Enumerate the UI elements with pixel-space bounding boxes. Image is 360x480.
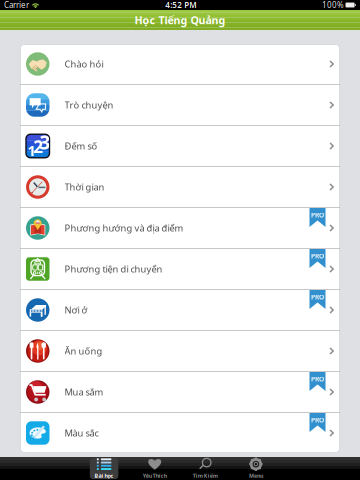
staticText: 100% <box>322 0 344 10</box>
button[interactable]: Mua sắm <box>20 372 340 412</box>
staticText: Mua sắm <box>64 386 103 398</box>
staticText: 4:52 PM <box>165 0 196 10</box>
button[interactable]: Chào hỏi <box>20 44 340 84</box>
button[interactable]: Phương tiện di chuyển <box>20 249 340 289</box>
button[interactable]: Menu <box>231 457 281 480</box>
staticText: Đếm số <box>64 140 97 152</box>
staticText: Chào hỏi <box>64 58 103 70</box>
staticText: Bài học <box>95 472 114 479</box>
button[interactable]: Yêu Thích <box>129 457 180 480</box>
button[interactable]: 1 <box>20 126 340 166</box>
button[interactable]: Trò chuyện <box>20 85 340 125</box>
button[interactable]: Tìm Kiếm <box>180 457 231 480</box>
staticText: Trò chuyện <box>64 99 113 111</box>
staticText: 3 <box>39 130 50 155</box>
staticText: Yêu Thích <box>143 472 167 479</box>
staticText: Nơi ở <box>64 304 87 316</box>
staticText: PRO <box>311 292 324 301</box>
button[interactable]: Bài học <box>79 457 129 480</box>
staticText: PRO <box>311 251 324 260</box>
staticText: Phương hướng và địa điểm <box>64 222 183 234</box>
button[interactable]: Ăn uống <box>20 331 340 371</box>
button[interactable]: Màu sắc <box>20 413 340 453</box>
staticText: Carrier <box>4 0 29 10</box>
staticText: Menu <box>249 472 263 479</box>
staticText: 1 <box>28 140 36 160</box>
button[interactable]: Thời gian <box>20 167 340 207</box>
button[interactable]: Nơi ở <box>20 290 340 330</box>
staticText: Tìm Kiếm <box>193 472 218 479</box>
staticText: PRO <box>311 210 324 219</box>
staticText: Ăn uống <box>64 345 102 357</box>
staticText: PRO <box>311 374 324 383</box>
staticText: Màu sắc <box>64 427 98 439</box>
staticText: Thời gian <box>64 181 104 193</box>
staticText: 2 <box>33 135 43 158</box>
button[interactable]: Phương hướng và địa điểm <box>20 208 340 248</box>
staticText: PRO <box>311 415 324 424</box>
staticText: Học Tiếng Quảng <box>134 13 225 27</box>
staticText: Phương tiện di chuyển <box>64 263 162 275</box>
